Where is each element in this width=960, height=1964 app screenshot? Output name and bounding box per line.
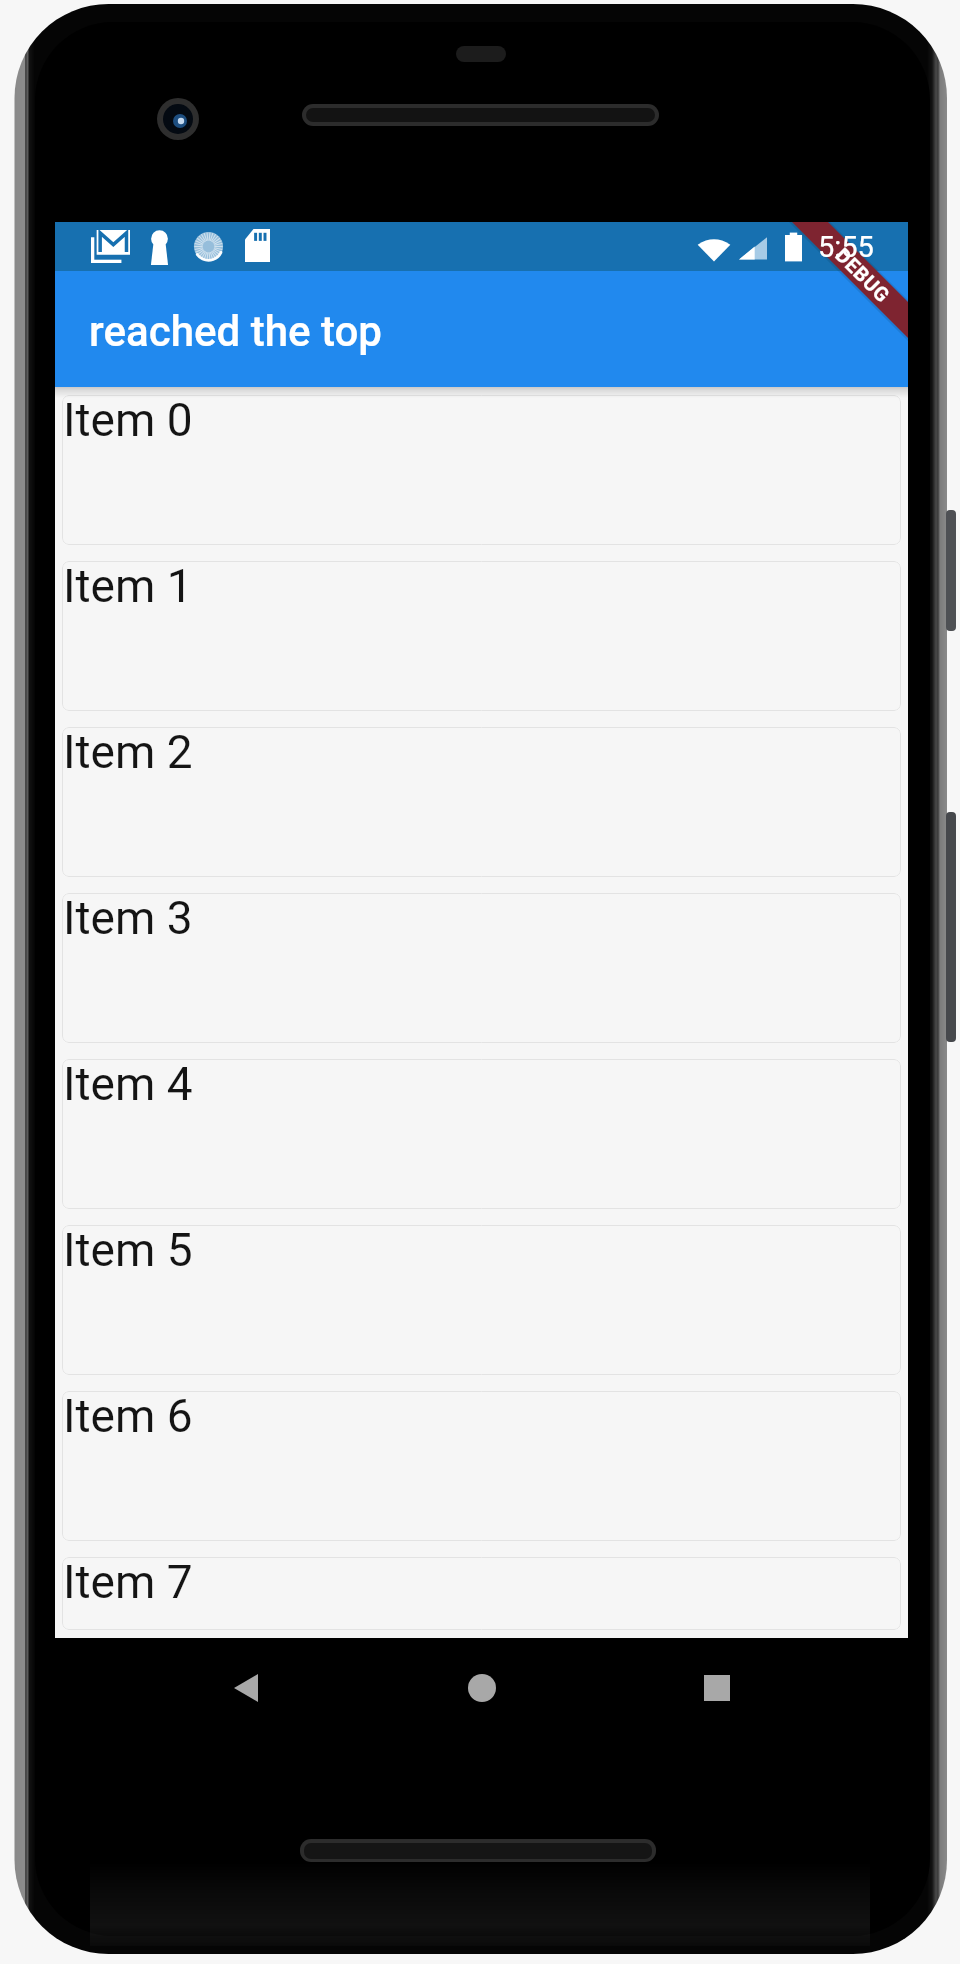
staticText: reached the top	[89, 307, 382, 356]
staticText: Item 5	[63, 1225, 193, 1277]
button[interactable]: Item 5	[62, 1225, 901, 1375]
staticText: Item 1	[63, 561, 193, 613]
button[interactable]: Item 3	[62, 893, 901, 1043]
staticText: Item 6	[63, 1391, 193, 1443]
button[interactable]: Recents	[679, 1650, 755, 1726]
staticText: Item 7	[63, 1557, 193, 1609]
staticText: Item 0	[63, 395, 193, 447]
button[interactable]: Item 6	[62, 1391, 901, 1541]
button[interactable]: Item 1	[62, 561, 901, 711]
button[interactable]: Item 2	[62, 727, 901, 877]
button[interactable]: Back	[208, 1650, 284, 1726]
staticText: Item 4	[63, 1059, 193, 1111]
button[interactable]: Item 0	[62, 395, 901, 545]
staticText: Item 3	[63, 893, 193, 945]
button[interactable]: Item 7	[62, 1557, 901, 1630]
staticText: 5:55	[818, 230, 874, 264]
button[interactable]: Item 4	[62, 1059, 901, 1209]
staticText: Item 2	[63, 727, 193, 779]
button[interactable]: Home	[444, 1650, 520, 1726]
